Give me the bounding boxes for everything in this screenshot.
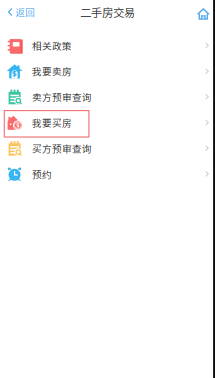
staticText: 返回 — [15, 5, 35, 19]
button[interactable]: 返回 — [0, 0, 43, 24]
staticText: 相关政策 — [32, 38, 72, 52]
button[interactable]: 卖方预审查询 — [0, 84, 215, 110]
staticText: 卖方预审查询 — [32, 90, 92, 104]
button[interactable]: 相关政策 — [0, 33, 215, 58]
button[interactable]: 我要买房 — [0, 110, 215, 135]
staticText: 二手房交易 — [80, 4, 135, 20]
button[interactable]: Home — [197, 0, 215, 24]
button[interactable]: 预约 — [0, 161, 215, 187]
staticText: 我要卖房 — [32, 64, 72, 78]
button[interactable]: 我要卖房 — [0, 58, 215, 84]
staticText: 我要买房 — [32, 116, 72, 129]
button[interactable]: 买方预审查询 — [0, 135, 215, 161]
staticText: 买方预审查询 — [32, 141, 92, 155]
staticText: 预约 — [32, 167, 52, 181]
